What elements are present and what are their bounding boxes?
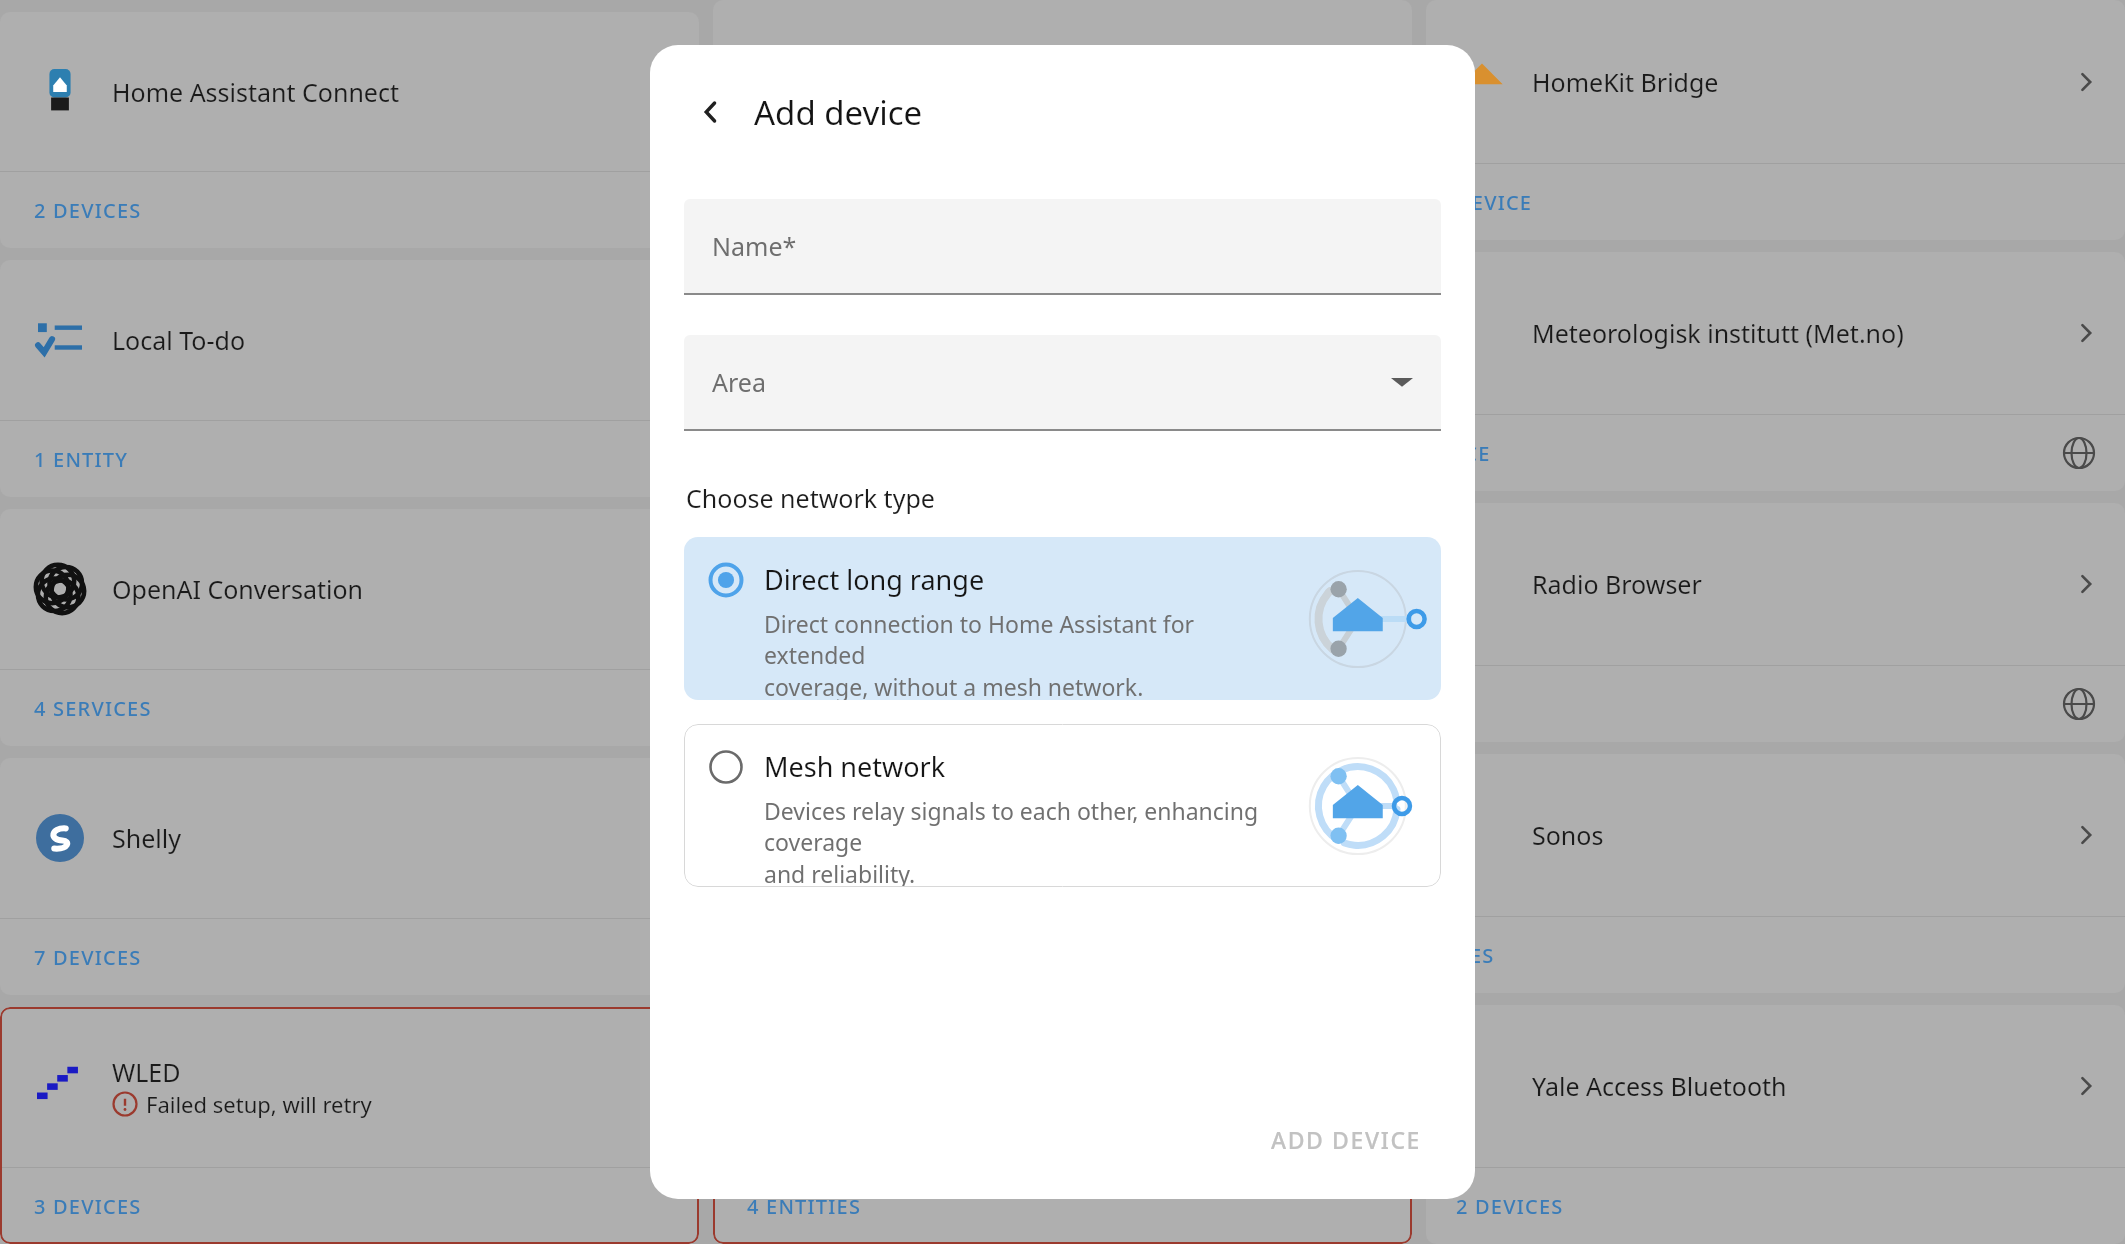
button[interactable]: Back bbox=[684, 85, 738, 139]
staticText: ADD DEVICE bbox=[1271, 1124, 1421, 1155]
staticText: Home Assistant Connect bbox=[112, 75, 399, 109]
staticText: Add device bbox=[754, 90, 923, 135]
button[interactable]: Sonos bbox=[1426, 754, 2125, 993]
staticText: Direct connection to Home Assistant for … bbox=[764, 608, 1299, 700]
button[interactable]: HomeKit Bridge bbox=[1426, 0, 2125, 240]
button[interactable]: ADD DEVICE bbox=[1257, 1114, 1435, 1165]
staticText: Mesh network bbox=[764, 748, 946, 785]
staticText: Devices relay signals to each other, enh… bbox=[764, 795, 1299, 887]
staticText: Local To-do bbox=[112, 323, 246, 357]
staticText: Yale Access Bluetooth bbox=[1532, 1069, 1787, 1103]
button[interactable]: Local To-do bbox=[0, 260, 699, 497]
button[interactable] bbox=[713, 252, 1412, 491]
staticText: Choose network type bbox=[686, 481, 935, 515]
staticText: WLED bbox=[112, 1055, 181, 1089]
staticText: Area bbox=[712, 365, 766, 399]
staticText: ICE bbox=[1456, 440, 1491, 467]
staticText: 3 DEVICES bbox=[34, 1193, 142, 1220]
staticText: OpenAI Conversation bbox=[112, 572, 363, 606]
button[interactable] bbox=[713, 754, 1412, 993]
staticText: Name* bbox=[712, 229, 797, 263]
staticText: 1 ENTITY bbox=[34, 446, 129, 473]
button[interactable]: Mesh network bbox=[684, 724, 1441, 887]
staticText: 2 DEVICES bbox=[1456, 1193, 1564, 1220]
staticText: HomeKit Bridge bbox=[1532, 65, 1719, 99]
button[interactable]: Meteorologisk institutt (Met.no) bbox=[1426, 252, 2125, 491]
staticText: 4 ENTITIES bbox=[747, 1193, 862, 1220]
staticText: Sonos bbox=[1532, 818, 1604, 852]
staticText: Radio Browser bbox=[1532, 567, 1702, 601]
button[interactable]: Shelly bbox=[0, 758, 699, 995]
button[interactable]: Radio Browser bbox=[1426, 503, 2125, 742]
staticText: CES bbox=[1456, 942, 1495, 969]
staticText: Failed setup, will retry bbox=[146, 1089, 372, 1119]
staticText: 4 SERVICES bbox=[34, 695, 152, 722]
staticText: 2 DEVICES bbox=[34, 197, 142, 224]
staticText: Shelly bbox=[112, 821, 181, 855]
button[interactable]: Direct long range bbox=[684, 537, 1441, 700]
staticText: 7 DEVICES bbox=[34, 944, 142, 971]
button[interactable]: Yale Access Bluetooth bbox=[1426, 1005, 2125, 1244]
staticText: DEVICE bbox=[1456, 189, 1533, 216]
staticText: Meteorologisk institutt (Met.no) bbox=[1532, 316, 1904, 350]
button[interactable]: WLED bbox=[0, 1007, 699, 1244]
button[interactable]: OpenAI Conversation bbox=[0, 509, 699, 746]
button[interactable]: Name* bbox=[684, 199, 1441, 295]
button[interactable]: 4 ENTITIES bbox=[713, 1005, 1412, 1244]
staticText: Direct long range bbox=[764, 561, 985, 598]
button[interactable]: Area bbox=[684, 335, 1441, 431]
button[interactable] bbox=[713, 0, 1412, 240]
button[interactable]: Home Assistant Connect bbox=[0, 12, 699, 248]
button[interactable] bbox=[713, 503, 1412, 742]
